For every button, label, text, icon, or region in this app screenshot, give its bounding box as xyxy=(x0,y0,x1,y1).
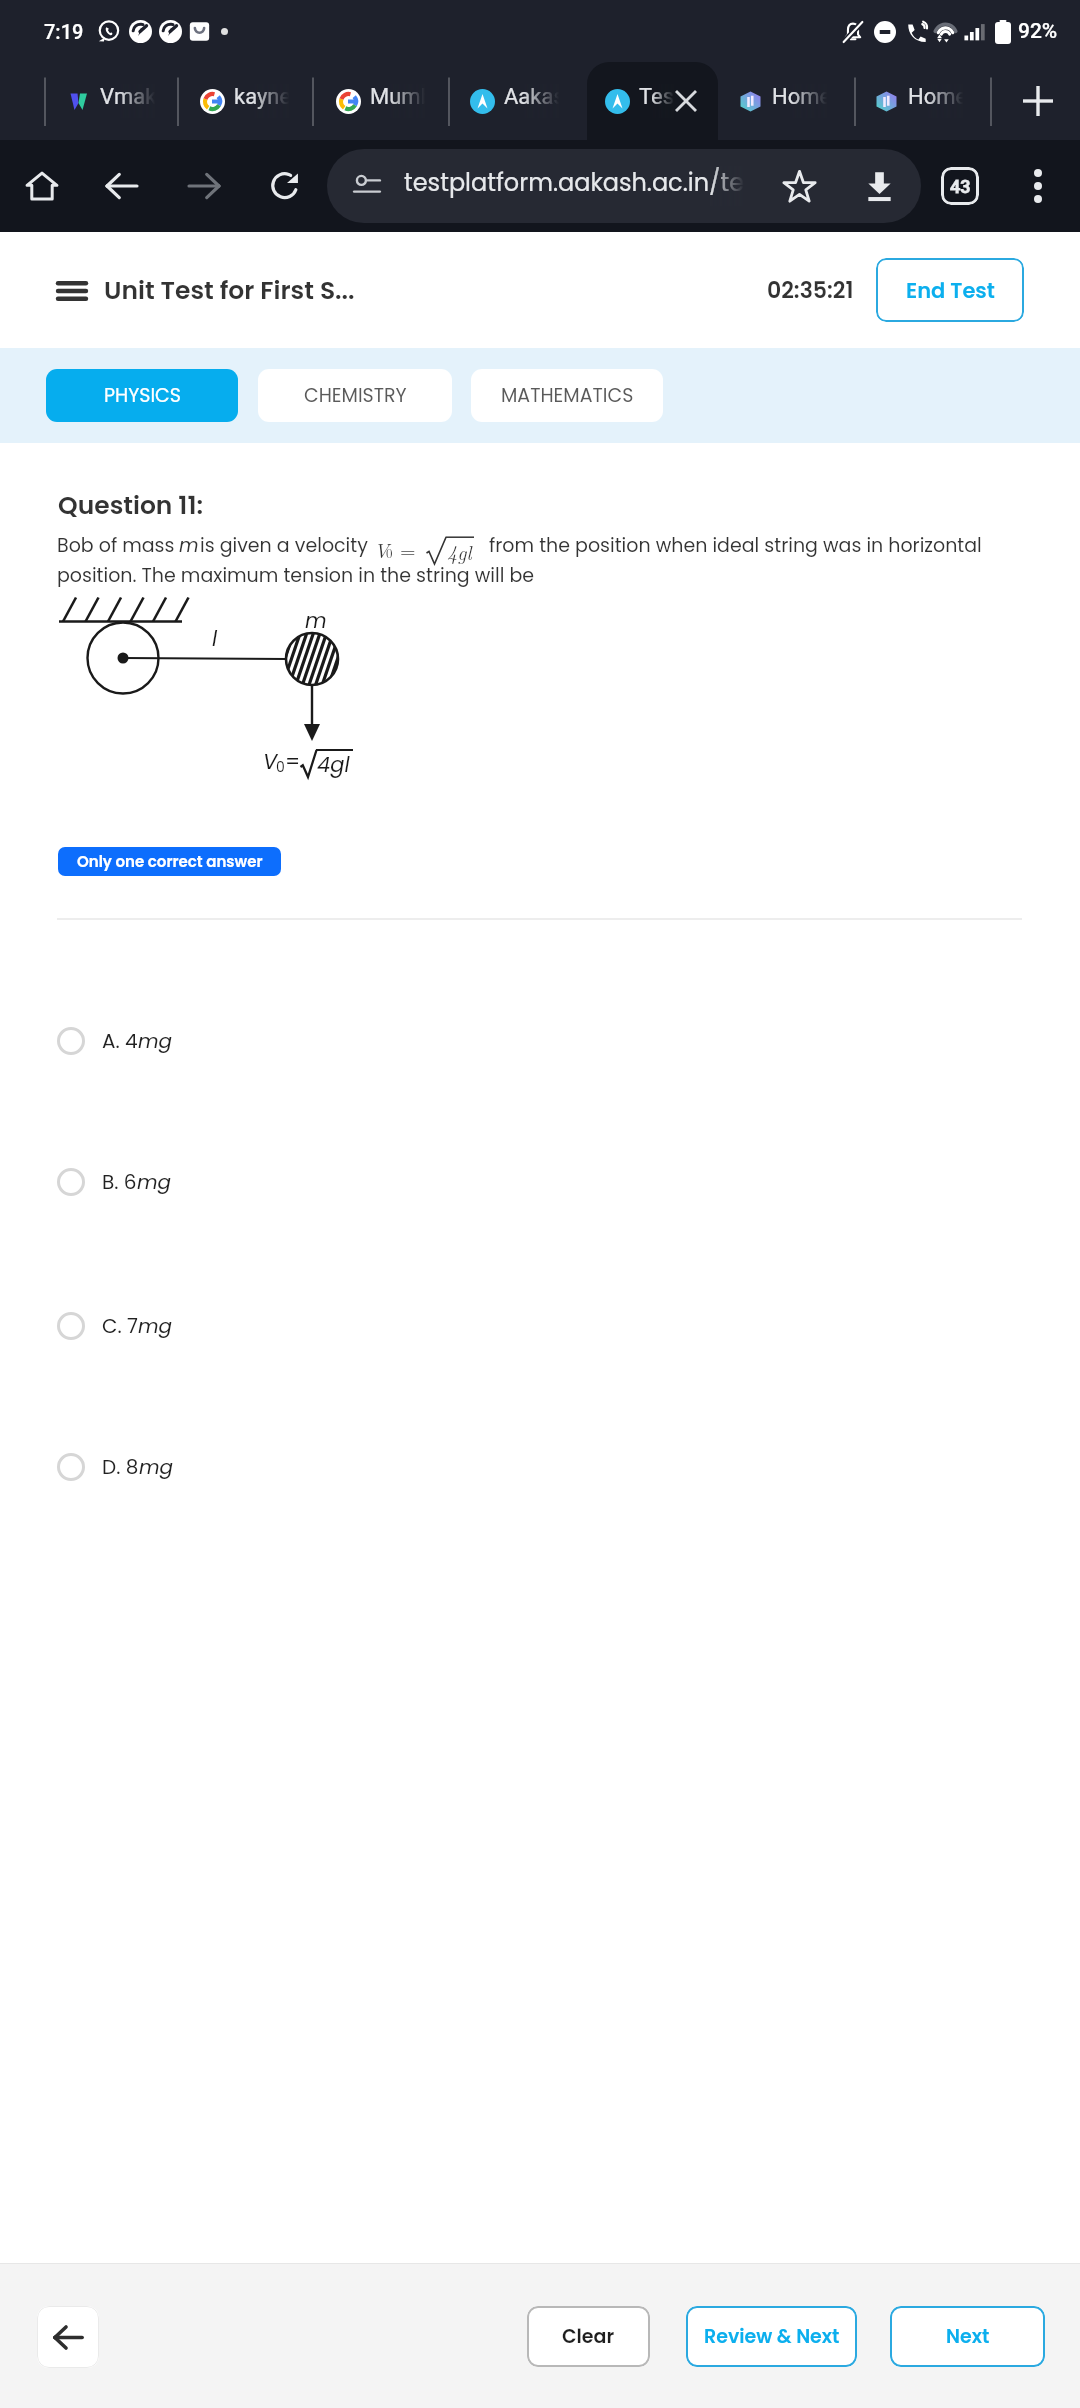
button[interactable]: MATHEMATICS xyxy=(471,369,663,422)
staticText: Mumba xyxy=(370,84,425,110)
button[interactable]: Back xyxy=(92,156,152,216)
staticText: = xyxy=(285,747,301,776)
button[interactable]: PHYSICS xyxy=(46,369,238,422)
staticText: Next xyxy=(946,2323,990,2350)
staticText: is given a velocity xyxy=(200,532,368,559)
staticText: testplatform.aakash.ac.in/test xyxy=(404,166,744,200)
button[interactable]: Review & Next xyxy=(686,2306,857,2367)
other: Menu xyxy=(58,281,86,301)
staticText: m xyxy=(179,532,199,559)
button[interactable]: Next xyxy=(890,2306,1045,2367)
button[interactable]: A. 4 xyxy=(45,1013,1080,1069)
staticText: 4gl xyxy=(317,750,350,779)
staticText: 43 xyxy=(950,176,971,197)
staticText: D. 8 xyxy=(102,1453,139,1481)
staticText: m xyxy=(305,606,327,635)
button[interactable]: kayne xyxy=(200,62,289,140)
button[interactable]: Vmake xyxy=(66,62,155,140)
staticText: Vmake xyxy=(100,84,155,110)
staticText: 7:19 xyxy=(44,20,84,43)
staticText: mg xyxy=(138,1312,173,1340)
staticText: Review & Next xyxy=(704,2323,840,2350)
staticText: 4gl xyxy=(447,537,472,565)
staticText: Bob of mass xyxy=(57,532,175,559)
staticText: V xyxy=(263,747,278,776)
button[interactable]: Homep xyxy=(738,62,827,140)
button[interactable]: End Test xyxy=(876,258,1024,322)
button[interactable]: Bookmark xyxy=(768,155,830,217)
staticText: 0 xyxy=(386,543,393,561)
button[interactable]: Menu xyxy=(58,273,355,308)
staticText: mg xyxy=(139,1453,174,1481)
staticText: 92% xyxy=(1018,19,1058,44)
button[interactable]: Homep xyxy=(874,62,963,140)
staticText: Tes xyxy=(639,84,674,110)
staticText: MATHEMATICS xyxy=(501,382,634,409)
staticText: l xyxy=(212,624,218,653)
button[interactable]: Clear xyxy=(527,2306,650,2367)
staticText: 02:35:21 xyxy=(767,275,854,306)
staticText: C. 7 xyxy=(102,1312,138,1340)
staticText: V xyxy=(374,535,389,563)
button[interactable]: CHEMISTRY xyxy=(258,369,452,422)
button[interactable]: B. 6 xyxy=(45,1154,1080,1210)
button[interactable]: Previous question xyxy=(37,2306,99,2368)
staticText: A. 4 xyxy=(102,1027,138,1055)
staticText: position. The maximum tension in the str… xyxy=(57,562,535,589)
staticText: Homep xyxy=(772,84,827,110)
staticText: mg xyxy=(137,1168,172,1196)
button[interactable]: C. 7 xyxy=(45,1298,1080,1354)
button[interactable]: Tes xyxy=(605,62,674,140)
staticText: End Test xyxy=(906,276,995,305)
button[interactable]: Open tabs xyxy=(930,156,990,216)
staticText: CHEMISTRY xyxy=(304,382,407,409)
button[interactable]: testplatform.aakash.ac.in/test xyxy=(327,149,921,223)
button[interactable]: Downloads xyxy=(848,155,910,217)
button[interactable]: Home xyxy=(12,156,72,216)
button[interactable]: Only one correct answer xyxy=(58,847,281,876)
button[interactable]: Close tab xyxy=(666,62,706,140)
staticText: Only one correct answer xyxy=(77,851,263,872)
staticText: Clear xyxy=(562,2323,615,2350)
staticText: PHYSICS xyxy=(104,382,181,409)
staticText: 0 xyxy=(276,757,285,777)
staticText: B. 6 xyxy=(102,1168,137,1196)
staticText: kayne xyxy=(234,84,289,110)
staticText: Question 11: xyxy=(58,488,204,523)
staticText: Aakash xyxy=(504,84,559,110)
button[interactable]: Aakash xyxy=(470,62,559,140)
staticText: from the position when ideal string was … xyxy=(489,532,982,559)
button[interactable]: More options xyxy=(1008,156,1068,216)
staticText: Unit Test for First S... xyxy=(104,273,355,308)
staticText: = xyxy=(400,535,416,563)
button[interactable]: New tab xyxy=(1012,75,1064,127)
staticText: Homep xyxy=(908,84,963,110)
staticText: mg xyxy=(138,1027,173,1055)
button[interactable]: Forward xyxy=(174,156,234,216)
button[interactable]: Mumba xyxy=(336,62,425,140)
button[interactable]: Reload xyxy=(255,156,315,216)
button[interactable]: D. 8 xyxy=(45,1439,1080,1495)
